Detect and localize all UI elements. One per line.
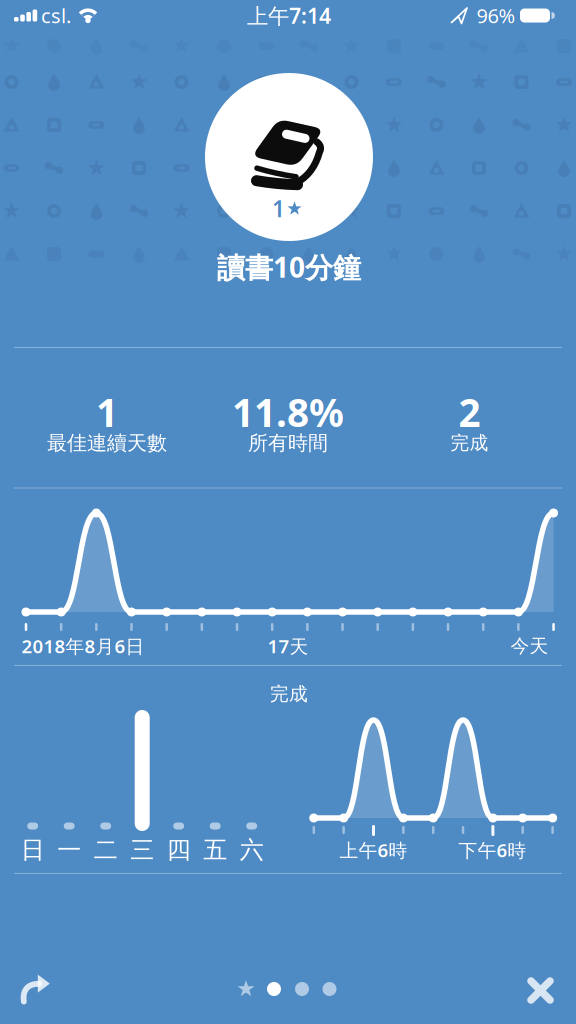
staticText: 三 xyxy=(130,835,154,865)
staticText: 讀書10分鐘 xyxy=(217,248,361,286)
button[interactable]: Page 2 of 4 xyxy=(227,973,347,1003)
staticText: 17天 xyxy=(267,634,308,658)
staticText: 上午6時 xyxy=(339,838,407,862)
staticText: 日 xyxy=(21,835,45,865)
staticText: csl. xyxy=(41,2,71,29)
staticText: 96% xyxy=(476,2,515,29)
staticText: 四 xyxy=(167,835,191,865)
button[interactable]: Close xyxy=(518,968,562,1012)
staticText: 2 xyxy=(458,386,480,438)
staticText: 2018年8月6日 xyxy=(21,634,144,658)
staticText: 二 xyxy=(94,835,118,865)
staticText: 上午7:14 xyxy=(247,1,331,30)
staticText: 完成 xyxy=(450,431,488,454)
staticText: 所有時間 xyxy=(248,431,328,455)
staticText: 11.8% xyxy=(232,386,344,438)
staticText: 下午6時 xyxy=(459,838,527,862)
staticText: 完成 xyxy=(270,682,308,705)
staticText: 最佳連續天數 xyxy=(47,431,167,455)
staticText: 一 xyxy=(57,835,81,865)
staticText: 1 xyxy=(96,386,118,438)
button[interactable]: Share xyxy=(13,966,57,1010)
staticText: 1 xyxy=(272,193,285,223)
staticText: 五 xyxy=(203,835,227,865)
staticText: 今天 xyxy=(510,634,548,657)
staticText: 六 xyxy=(240,835,264,865)
